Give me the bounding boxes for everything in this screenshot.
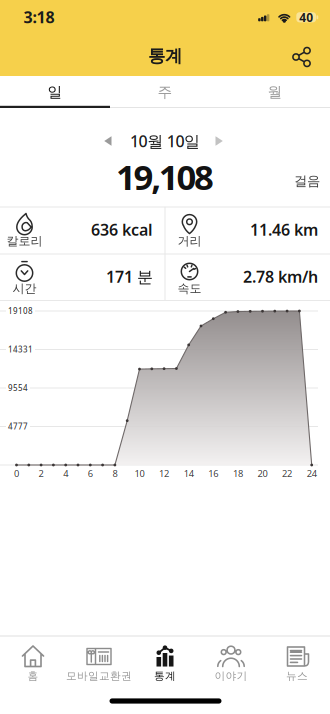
staticText: 18 [233, 467, 243, 480]
staticText: 12 [159, 467, 169, 480]
button[interactable]: 홈 [0, 636, 66, 688]
staticText: 11.46 km [250, 219, 318, 240]
staticText: 홈 [27, 669, 38, 682]
staticText: 통계 [154, 669, 176, 682]
staticText: 모바일교환권 [66, 669, 132, 682]
staticText: 3:18 [23, 6, 54, 28]
staticText: 20 [257, 467, 267, 480]
staticText: 16 [208, 467, 218, 480]
button[interactable]: 일 [0, 76, 110, 108]
staticText: 10월 10일 [130, 130, 200, 152]
staticText: 4 [63, 467, 68, 480]
staticText: 일 [47, 83, 62, 101]
staticText: 뉴스 [286, 669, 308, 682]
button[interactable]: 이야기 [198, 636, 264, 688]
button[interactable]: Next day [197, 125, 241, 157]
staticText: 걸음 [294, 173, 320, 189]
staticText: 월 [267, 83, 282, 101]
staticText: 14 [184, 467, 194, 480]
staticText: 6 [88, 467, 93, 480]
staticText: 통계 [148, 45, 182, 67]
staticText: 8 [112, 467, 117, 480]
staticText: 시간 [12, 281, 36, 296]
button[interactable]: 모바일교환권 [66, 636, 132, 688]
staticText: 24 [307, 467, 317, 480]
staticText: 22 [282, 467, 292, 480]
staticText: 주 [157, 83, 172, 101]
staticText: 속도 [177, 281, 201, 296]
button[interactable]: 뉴스 [264, 636, 330, 688]
staticText: 칼로리 [6, 234, 42, 248]
button[interactable]: 주 [110, 76, 220, 108]
staticText: 2.78 km/h [243, 266, 318, 287]
staticText: 2 [39, 467, 44, 480]
staticText: 19,108 [116, 153, 214, 199]
staticText: 이야기 [214, 669, 247, 682]
staticText: 40 [299, 9, 313, 25]
button[interactable]: 통계 [132, 636, 198, 688]
staticText: 4777 [8, 421, 28, 432]
staticText: 거리 [177, 234, 201, 248]
button[interactable]: Share [280, 37, 324, 77]
button[interactable]: Previous day [86, 125, 130, 157]
staticText: 636 kcal [91, 219, 153, 240]
staticText: 10 [134, 467, 144, 480]
staticText: 171 분 [106, 266, 153, 287]
staticText: 0 [14, 467, 19, 480]
staticText: 14331 [8, 344, 33, 355]
button[interactable]: 월 [220, 76, 330, 108]
staticText: 19108 [8, 306, 33, 316]
staticText: 9554 [8, 383, 28, 393]
